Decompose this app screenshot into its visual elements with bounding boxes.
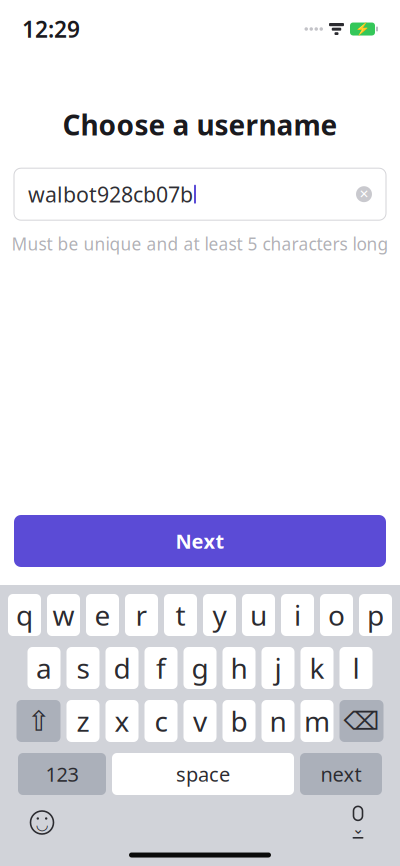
staticText: space	[176, 761, 230, 787]
staticText: ◡	[36, 816, 47, 833]
staticText: Must be unique and at least 5 characters…	[11, 232, 388, 255]
button[interactable]: e	[86, 594, 119, 636]
button[interactable]: space	[112, 753, 294, 795]
button[interactable]: s	[66, 647, 99, 689]
staticText: f	[156, 649, 166, 687]
staticText: p	[367, 596, 384, 634]
button[interactable]: y	[203, 594, 236, 636]
staticText: ⌄	[352, 820, 364, 837]
staticText: c	[154, 702, 167, 740]
button[interactable]: k	[300, 647, 333, 689]
staticText: walbot928cb07b	[28, 180, 193, 208]
staticText: s	[76, 649, 89, 687]
button[interactable]: d	[105, 647, 138, 689]
button[interactable]: p	[359, 594, 392, 636]
button[interactable]: z	[66, 700, 99, 742]
button[interactable]: r	[125, 594, 158, 636]
button[interactable]: t	[164, 594, 197, 636]
button[interactable]: next	[300, 753, 382, 795]
staticText: 12:29	[22, 14, 80, 44]
button[interactable]: f	[144, 647, 177, 689]
button[interactable]: x	[105, 700, 138, 742]
button[interactable]: ⇧	[16, 700, 60, 742]
staticText: k	[309, 649, 324, 687]
staticText: Choose a username	[62, 106, 337, 143]
staticText: ⚡	[355, 22, 370, 36]
button[interactable]: Next	[14, 515, 386, 567]
button[interactable]: q	[8, 594, 41, 636]
staticText: j	[274, 649, 281, 687]
staticText: o	[328, 596, 345, 634]
staticText: x	[114, 702, 129, 740]
staticText: m	[304, 702, 330, 740]
button[interactable]: w	[47, 594, 80, 636]
staticText: q	[16, 596, 33, 634]
staticText: r	[135, 596, 147, 634]
button[interactable]: u	[242, 594, 275, 636]
staticText: i	[294, 596, 301, 634]
staticText: e	[94, 596, 110, 634]
button[interactable]: m	[300, 700, 333, 742]
button[interactable]: j	[261, 647, 294, 689]
button[interactable]: a	[27, 647, 60, 689]
staticText: next	[320, 761, 361, 787]
button[interactable]: n	[261, 700, 294, 742]
button[interactable]: l	[339, 647, 372, 689]
staticText: a	[36, 649, 52, 687]
staticText: n	[269, 702, 286, 740]
staticText: d	[113, 649, 130, 687]
button[interactable]: ⌫	[339, 700, 383, 742]
staticText: Next	[175, 528, 224, 554]
button[interactable]: g	[183, 647, 216, 689]
staticText: g	[191, 649, 208, 687]
staticText: t	[175, 596, 185, 634]
staticText: l	[352, 649, 359, 687]
staticText: z	[76, 702, 89, 740]
staticText: ⌫	[343, 707, 379, 735]
staticText: b	[230, 702, 247, 740]
button[interactable]: 123	[18, 753, 106, 795]
staticText: ✕	[359, 187, 369, 201]
staticText: ⇧	[27, 705, 50, 737]
staticText: y	[212, 596, 226, 634]
button[interactable]: Emoji	[20, 800, 64, 844]
button[interactable]: i	[281, 594, 314, 636]
button[interactable]: h	[222, 647, 255, 689]
button[interactable]: walbot928cb07b	[14, 168, 386, 220]
staticText: v	[193, 702, 207, 740]
button[interactable]: Dictate	[336, 800, 380, 844]
button[interactable]: b	[222, 700, 255, 742]
button[interactable]: o	[320, 594, 353, 636]
staticText: h	[230, 649, 247, 687]
staticText: w	[52, 596, 74, 634]
button[interactable]: c	[144, 700, 177, 742]
staticText: 123	[45, 761, 78, 787]
staticText: u	[250, 596, 267, 634]
button[interactable]: v	[183, 700, 216, 742]
